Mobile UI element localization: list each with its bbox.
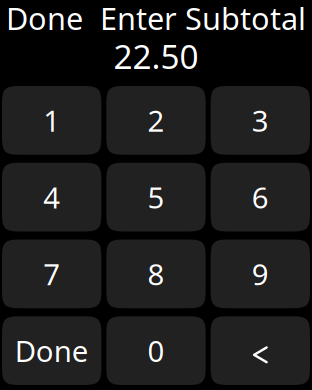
- button[interactable]: 1: [2, 86, 101, 155]
- button[interactable]: Done: [0, 0, 83, 36]
- staticText: 4: [43, 178, 60, 217]
- staticText: Done: [15, 331, 89, 370]
- staticText: 1: [43, 101, 60, 140]
- staticText: 6: [252, 178, 269, 217]
- button[interactable]: 2: [106, 86, 206, 155]
- staticText: 8: [147, 254, 164, 293]
- button[interactable]: 8: [106, 239, 206, 308]
- button[interactable]: 0: [106, 316, 206, 385]
- staticText: 9: [252, 254, 269, 293]
- button[interactable]: 7: [2, 239, 101, 308]
- button[interactable]: 6: [211, 163, 310, 232]
- staticText: 22.50: [113, 34, 198, 78]
- staticText: 3: [252, 101, 269, 140]
- button[interactable]: 3: [211, 86, 310, 155]
- button[interactable]: 4: [2, 163, 101, 232]
- staticText: 0: [147, 331, 164, 370]
- button[interactable]: Done: [2, 316, 101, 385]
- staticText: Done: [6, 0, 83, 38]
- button[interactable]: 9: [211, 239, 310, 308]
- button[interactable]: 5: [106, 163, 206, 232]
- staticText: 7: [43, 254, 60, 293]
- staticText: Enter Subtotal: [100, 0, 306, 38]
- staticText: 5: [147, 178, 164, 217]
- button[interactable]: Delete: [211, 316, 310, 385]
- staticText: 2: [147, 101, 164, 140]
